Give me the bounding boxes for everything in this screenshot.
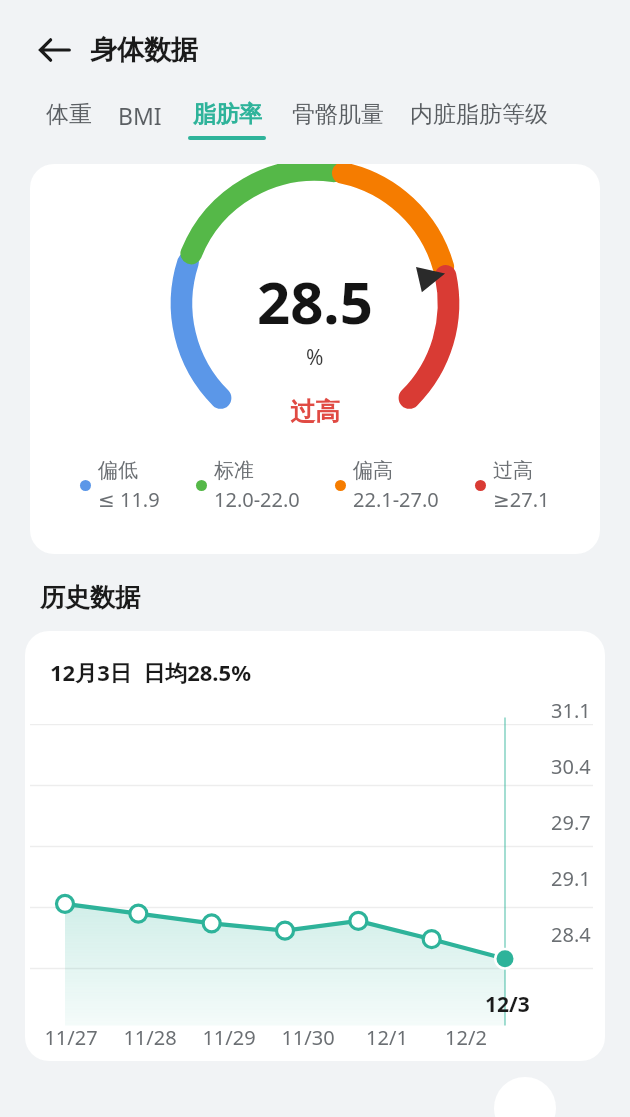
staticText: 29.7 <box>551 809 591 836</box>
staticText: 体重 <box>46 100 92 129</box>
staticText: 30.4 <box>551 753 591 780</box>
staticText: 12月3日 日均28.5% <box>50 657 251 687</box>
button[interactable]: 体重 <box>46 100 92 140</box>
staticText: 内脏脂肪等级 <box>410 100 548 129</box>
button[interactable]: BMI <box>118 100 162 142</box>
staticText: 骨骼肌量 <box>292 100 384 129</box>
staticText: 11/28 <box>123 1024 177 1051</box>
staticText: 12/2 <box>445 1024 487 1051</box>
staticText: 29.1 <box>551 865 591 892</box>
staticText: 12/1 <box>366 1024 408 1051</box>
staticText: ≥27.1 <box>493 486 550 513</box>
staticText: 28.5 <box>257 262 373 341</box>
staticText: 11/29 <box>202 1024 256 1051</box>
staticText: 脂肪率 <box>193 100 262 129</box>
staticText: 12/3 <box>485 990 530 1019</box>
button[interactable]: Back <box>28 24 80 76</box>
staticText: 偏高 <box>353 458 393 483</box>
staticText: BMI <box>118 100 162 131</box>
staticText: % <box>306 343 324 372</box>
staticText: 偏低 <box>98 458 138 483</box>
staticText: 22.1-27.0 <box>353 486 439 513</box>
staticText: 过高 <box>493 458 533 483</box>
staticText: 历史数据 <box>40 582 140 613</box>
staticText: 标准 <box>214 458 254 483</box>
button[interactable]: 脂肪率 <box>188 100 266 140</box>
staticText: ≤ 11.9 <box>98 486 160 513</box>
button[interactable]: 骨骼肌量 <box>292 100 384 140</box>
staticText: 11/27 <box>44 1024 98 1051</box>
button[interactable]: 内脏脂肪等级 <box>410 100 548 140</box>
staticText: 28.4 <box>551 921 591 948</box>
button[interactable]: Add record <box>494 1077 556 1117</box>
staticText: 身体数据 <box>90 33 198 67</box>
staticText: 31.1 <box>551 697 591 724</box>
staticText: 12.0-22.0 <box>214 486 300 513</box>
staticText: 过高 <box>290 396 340 427</box>
staticText: 11/30 <box>281 1024 335 1051</box>
